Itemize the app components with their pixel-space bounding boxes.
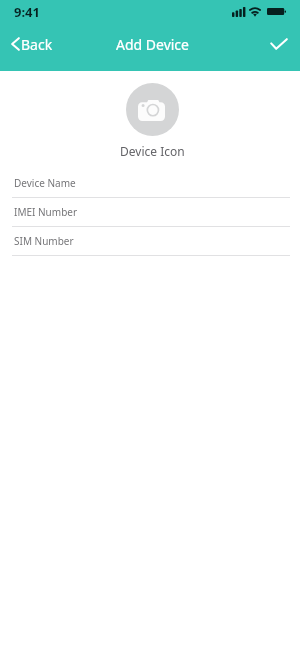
staticText: 9:41 — [14, 3, 40, 21]
staticText: SIM Number — [14, 234, 74, 248]
staticText: IMEI Number — [14, 205, 78, 219]
button[interactable]: Device Name — [0, 169, 300, 198]
button[interactable]: Choose device icon — [126, 83, 179, 136]
staticText: Device Name — [14, 176, 76, 190]
staticText: Add Device — [116, 35, 189, 54]
button[interactable]: SIM Number — [0, 227, 300, 256]
staticText: Back — [21, 35, 53, 54]
staticText: Device Icon — [120, 143, 185, 159]
button[interactable]: Save device — [266, 31, 292, 57]
button[interactable]: IMEI Number — [0, 198, 300, 227]
button[interactable]: Back — [7, 30, 57, 59]
